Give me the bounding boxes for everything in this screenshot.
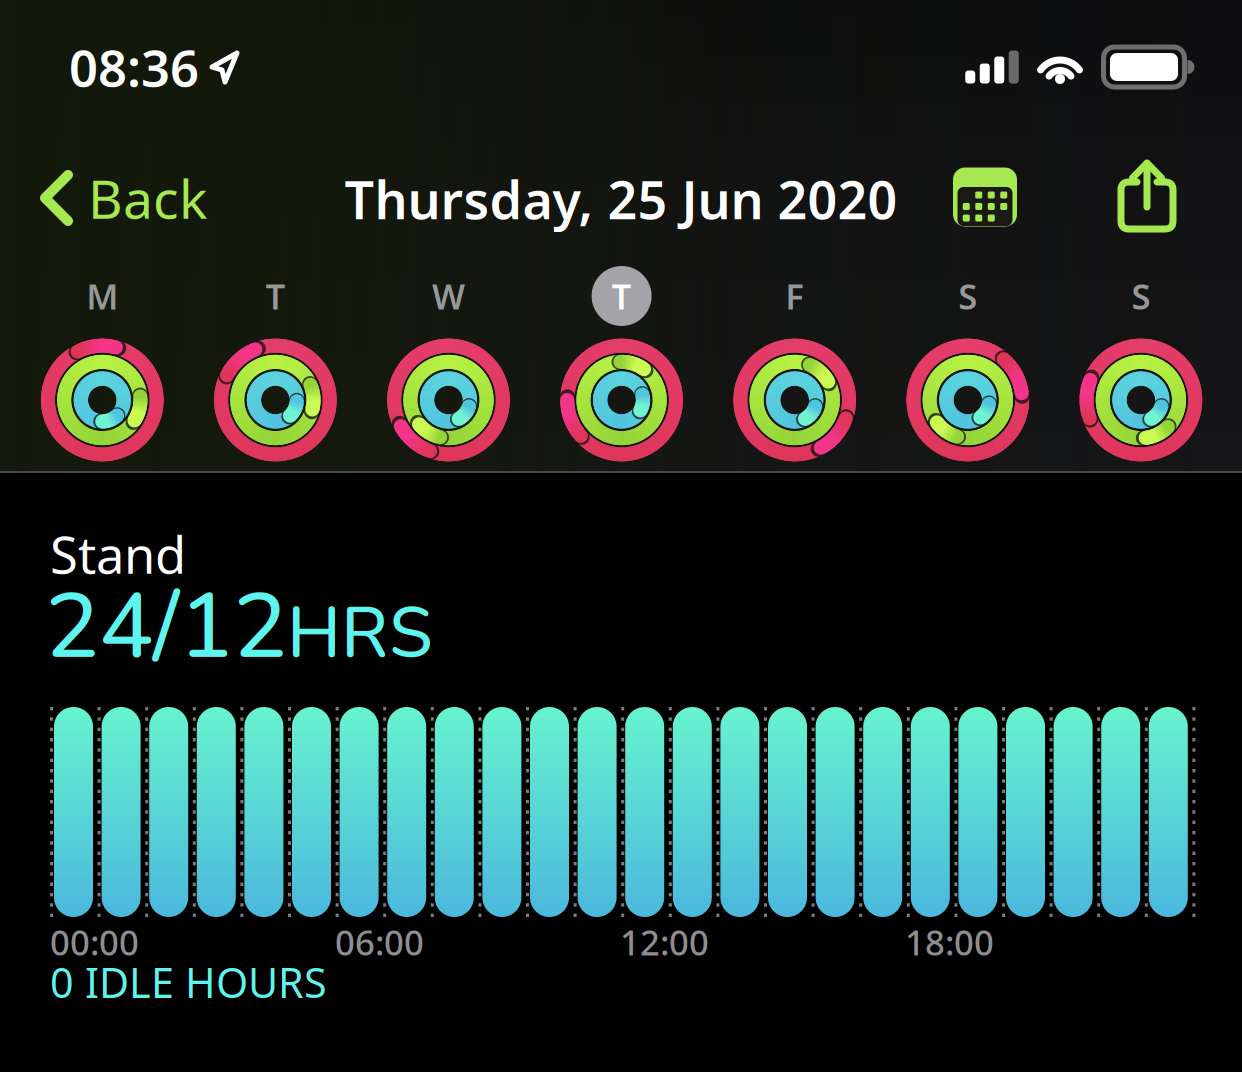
staticText: W bbox=[432, 273, 465, 319]
button[interactable]: Calendar bbox=[933, 149, 1037, 245]
staticText: S bbox=[958, 273, 977, 319]
staticText: F bbox=[785, 273, 804, 319]
staticText: Back bbox=[88, 163, 207, 233]
button[interactable]: M bbox=[37, 246, 167, 346]
staticText: 24/12 bbox=[45, 565, 287, 689]
button[interactable]: W bbox=[383, 246, 513, 346]
button[interactable]: S bbox=[1076, 246, 1206, 346]
staticText: 0 IDLE HOURS bbox=[50, 955, 327, 1009]
button[interactable]: F bbox=[730, 246, 860, 346]
staticText: Stand bbox=[50, 520, 186, 588]
staticText: S bbox=[1131, 273, 1150, 319]
staticText: 08:36 bbox=[69, 33, 199, 101]
staticText: 06:00 bbox=[335, 919, 424, 965]
staticText: Thursday, 25 Jun 2020 bbox=[344, 164, 897, 234]
staticText: 18:00 bbox=[905, 919, 994, 965]
button[interactable]: T bbox=[557, 246, 687, 346]
staticText: T bbox=[612, 273, 632, 319]
staticText: T bbox=[265, 273, 285, 319]
staticText: 12:00 bbox=[620, 919, 709, 965]
staticText: 00:00 bbox=[50, 919, 139, 965]
button[interactable]: Share bbox=[1092, 146, 1202, 246]
button[interactable]: S bbox=[903, 246, 1033, 346]
button[interactable]: T bbox=[210, 246, 340, 346]
staticText: HRS bbox=[287, 585, 433, 682]
staticText: M bbox=[86, 273, 118, 319]
button[interactable]: Back bbox=[3, 150, 273, 246]
